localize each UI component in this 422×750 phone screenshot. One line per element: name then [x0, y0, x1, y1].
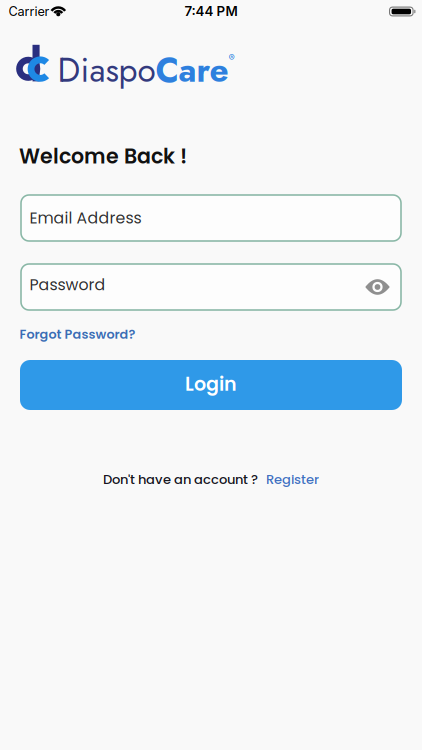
button[interactable]: Password — [21, 264, 401, 310]
button[interactable]: Show password — [365, 279, 389, 295]
button[interactable]: Register — [266, 470, 319, 489]
button[interactable]: Email Address — [21, 195, 401, 241]
staticText: Email Address — [29, 207, 141, 229]
staticText: Don't have an account ? — [103, 470, 258, 489]
staticText: Care — [155, 46, 228, 94]
staticText: Welcome Back ! — [19, 142, 187, 171]
staticText: Forgot Password? — [19, 325, 135, 343]
staticText: ® — [228, 52, 234, 63]
button[interactable]: Login — [20, 360, 402, 410]
staticText: Register — [266, 470, 319, 489]
staticText: Login — [185, 371, 237, 397]
staticText: 7:44 PM — [184, 3, 237, 19]
staticText: Diaspo — [57, 46, 155, 94]
button[interactable]: Forgot Password? — [19, 325, 135, 343]
staticText: Carrier — [9, 4, 50, 19]
staticText: Password — [29, 274, 105, 296]
